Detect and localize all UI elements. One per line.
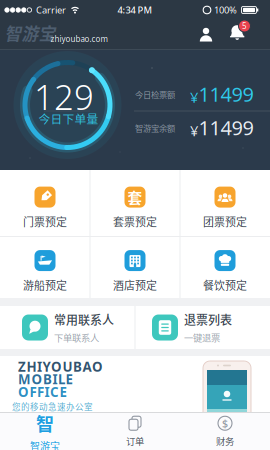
staticText: 常用联系人 <box>54 311 114 328</box>
staticText: 财务 <box>216 434 234 448</box>
staticText: ¥ <box>190 87 198 107</box>
staticText: 11499 <box>198 81 253 107</box>
button[interactable]: 酒店预定 <box>90 240 179 302</box>
staticText: 游船预定 <box>23 277 67 293</box>
staticText: ZHIYOUBAO <box>18 358 103 375</box>
button[interactable]: 餐饮预定 <box>180 240 269 302</box>
staticText: 今日下单量 <box>38 110 98 127</box>
button[interactable]: 游船预定 <box>0 240 89 302</box>
staticText: 团票预定 <box>203 214 247 229</box>
staticText: 您的移动急速办公室 <box>12 400 93 413</box>
staticText: MOBILE <box>18 370 72 388</box>
staticText: 下单联系人 <box>54 331 99 344</box>
staticText: 100% <box>214 4 237 16</box>
button[interactable]: Notifications <box>222 18 252 48</box>
button[interactable]: 门票预定 <box>0 177 89 239</box>
staticText: 129 <box>34 73 94 119</box>
staticText: Carrier <box>36 4 66 16</box>
button[interactable]: Profile <box>191 20 221 50</box>
staticText: 一键退票 <box>184 331 220 344</box>
staticText: 智游宝余额 <box>135 122 175 134</box>
staticText: 5 <box>242 20 247 31</box>
button[interactable]: 套 <box>90 177 179 239</box>
staticText: 套 <box>127 186 142 208</box>
staticText: 酒店预定 <box>113 277 157 293</box>
staticText: 订单 <box>126 434 144 448</box>
staticText: 智 <box>36 410 54 436</box>
button[interactable]: 常用联系人 <box>0 306 135 349</box>
staticText: 餐饮预定 <box>203 277 247 293</box>
staticText: zhiyoubao.com <box>50 34 107 44</box>
button[interactable]: 团票预定 <box>180 177 269 239</box>
staticText: ¥ <box>190 121 198 140</box>
staticText: 今日检票额 <box>135 88 175 100</box>
button[interactable]: 退票列表 <box>135 306 270 349</box>
staticText: 11499 <box>198 114 253 141</box>
button[interactable]: 订单 <box>90 413 180 450</box>
staticText: $ <box>222 416 228 430</box>
staticText: 门票预定 <box>23 214 67 229</box>
staticText: 套票预定 <box>113 214 157 229</box>
staticText: OFFICE <box>18 383 66 401</box>
staticText: 4:34 PM <box>117 4 152 16</box>
staticText: 智游宝 <box>30 438 60 450</box>
staticText: 智游宝 <box>4 21 55 45</box>
staticText: 退票列表 <box>184 311 232 328</box>
button[interactable]: 智 <box>0 413 90 450</box>
button[interactable]: $ <box>180 413 270 450</box>
